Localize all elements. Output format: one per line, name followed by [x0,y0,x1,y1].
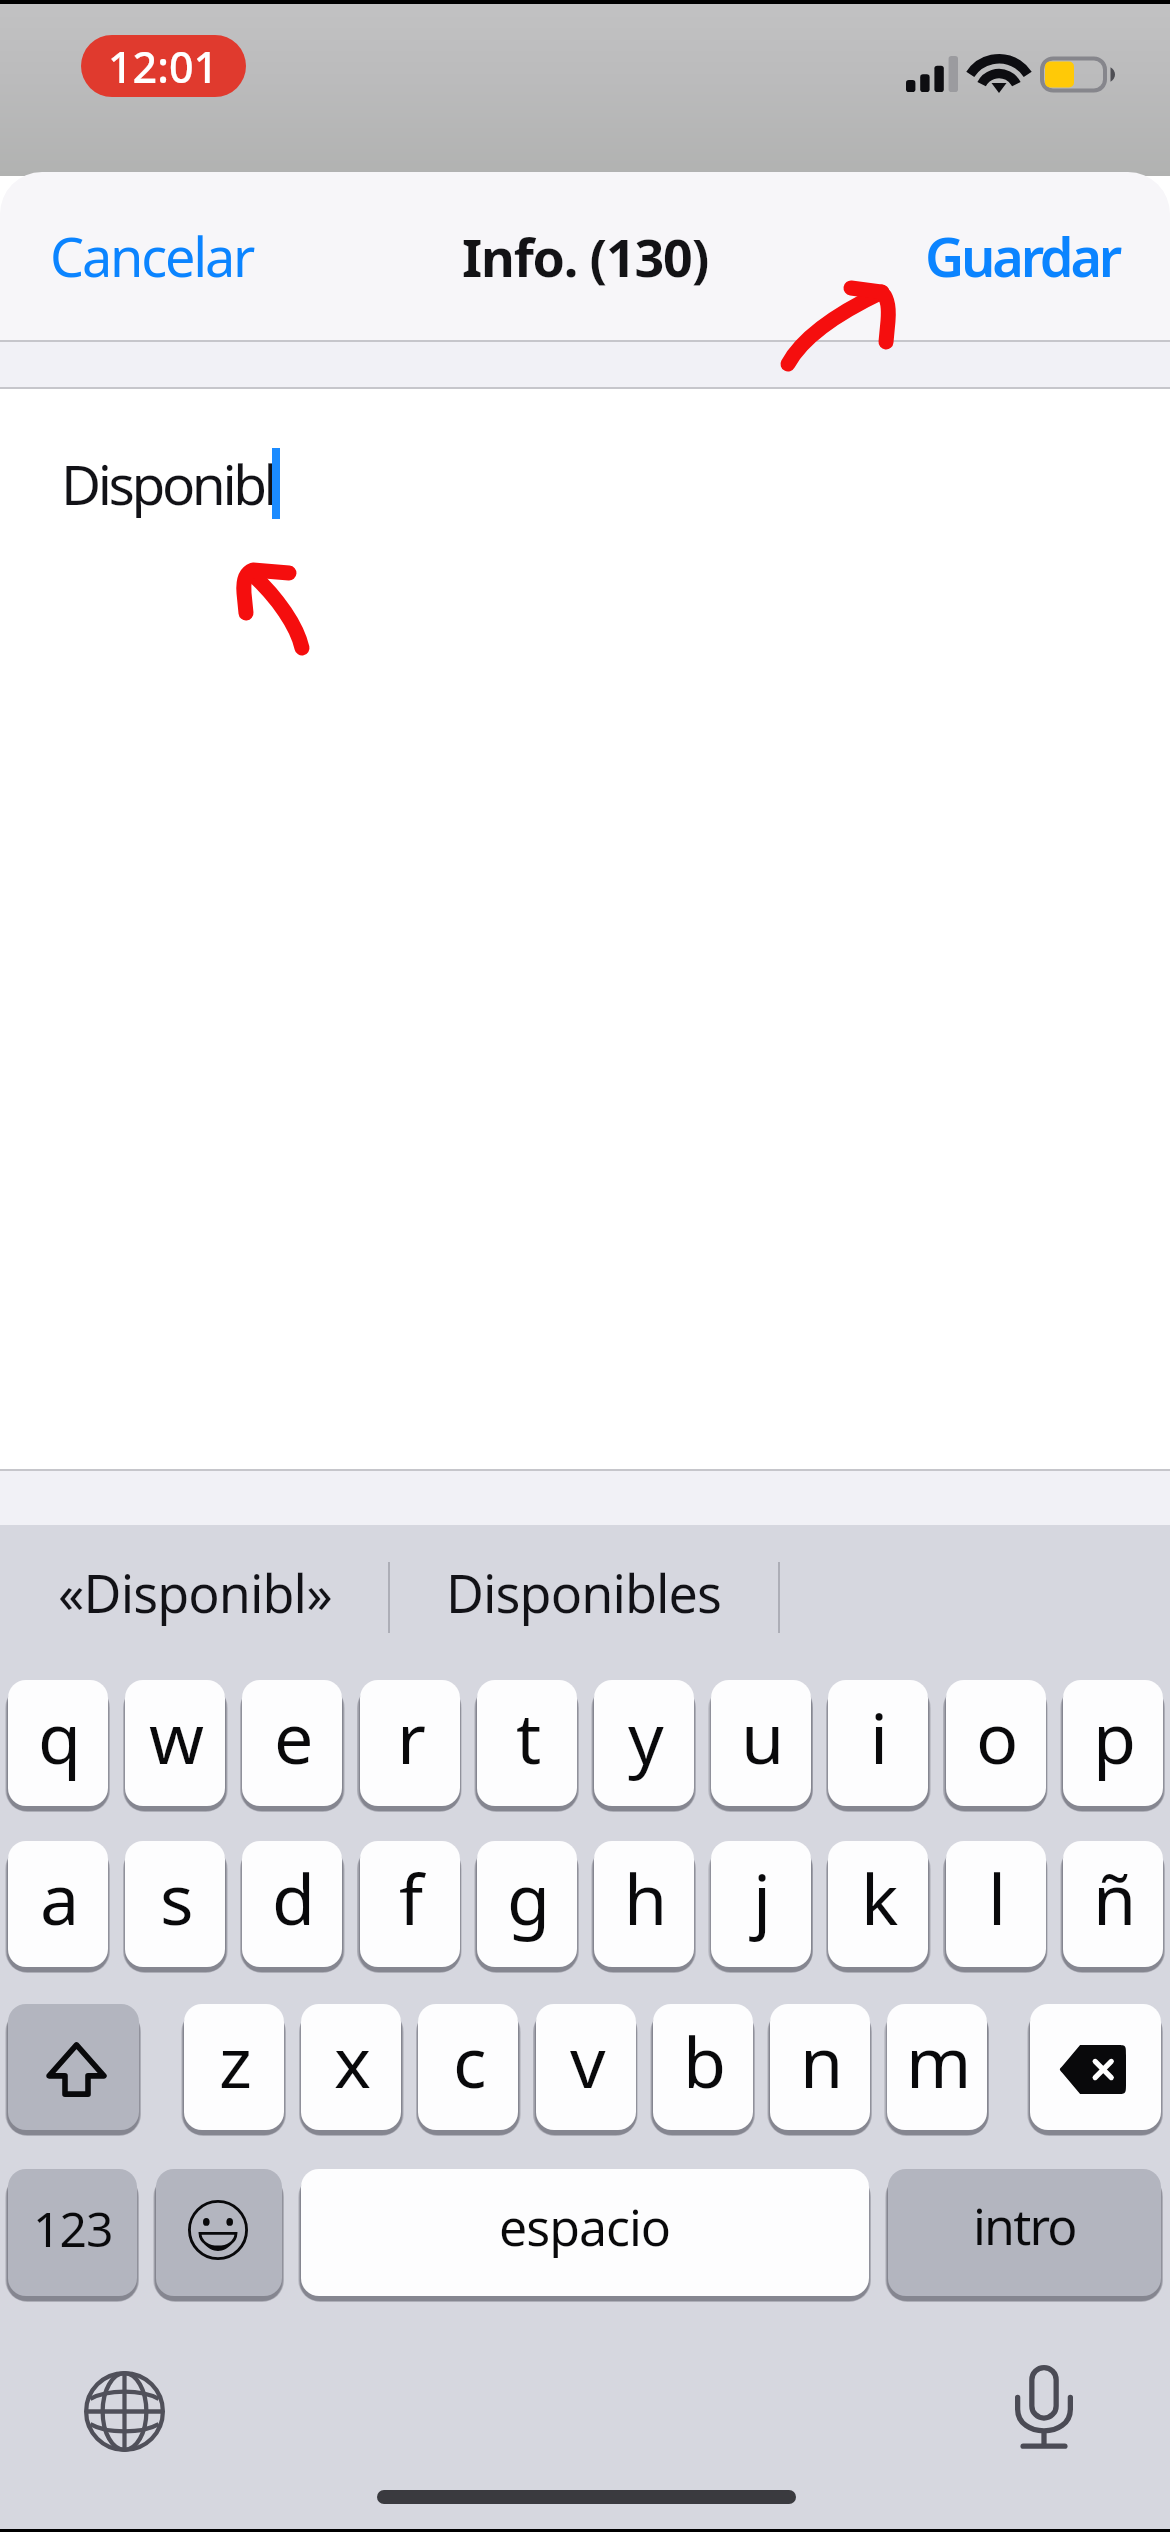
button[interactable]: 123 [8,2169,137,2296]
staticText: 123 [33,2196,113,2261]
button[interactable]: d [242,1841,342,1967]
button[interactable]: g [477,1841,577,1967]
staticText: ñ [1093,1850,1134,1945]
button[interactable]: a [8,1841,108,1967]
staticText: l [988,1850,1004,1945]
staticText: q [38,1689,79,1784]
button[interactable]: b [653,2004,753,2130]
button[interactable]: l [946,1841,1046,1967]
button[interactable]: x [301,2004,401,2130]
staticText: c [453,2013,484,2108]
staticText: b [683,2013,724,2108]
button[interactable]: q [8,1680,108,1806]
staticText: Cancelar [50,219,254,293]
staticText: d [272,1850,313,1945]
button[interactable]: i [828,1680,928,1806]
button[interactable]: Dictate [984,2347,1104,2467]
staticText: Disponibles [446,1557,722,1628]
staticText: r [397,1689,423,1784]
button[interactable]: «Disponibl» [0,1525,389,1659]
button[interactable]: c [418,2004,518,2130]
button[interactable]: s [125,1841,225,1967]
staticText: a [40,1850,77,1945]
staticText: i [870,1689,886,1784]
staticText: m [906,2013,969,2108]
button[interactable]: w [125,1680,225,1806]
staticText: Disponibl [61,446,275,521]
staticText: j [753,1850,769,1945]
button[interactable]: u [711,1680,811,1806]
button[interactable]: intro [888,2169,1161,2296]
button[interactable]: f [360,1841,460,1967]
button[interactable]: o [946,1680,1046,1806]
staticText: Guardar [925,219,1120,293]
button[interactable]: t [477,1680,577,1806]
button[interactable]: Backspace [1030,2004,1161,2130]
staticText: n [800,2013,841,2108]
button[interactable]: r [360,1680,460,1806]
button[interactable]: n [770,2004,870,2130]
staticText: o [976,1689,1016,1784]
button[interactable]: ñ [1063,1841,1163,1967]
button[interactable]: Emoji [156,2169,282,2296]
staticText: espacio [499,2193,671,2261]
button[interactable]: h [594,1841,694,1967]
button[interactable]: k [828,1841,928,1967]
staticText: k [861,1850,896,1945]
staticText: h [624,1850,665,1945]
button[interactable]: j [711,1841,811,1967]
staticText: 12:01 [108,37,219,96]
button[interactable]: Shift [8,2004,139,2130]
staticText: u [741,1689,782,1784]
staticText: p [1093,1689,1134,1784]
button[interactable]: Change keyboard [64,2351,184,2471]
staticText: «Disponibl» [58,1557,332,1628]
button[interactable]: Disponibles [389,1525,778,1659]
staticText: w [149,1689,202,1784]
staticText: t [516,1689,539,1784]
button[interactable]: p [1063,1680,1163,1806]
button[interactable]: v [536,2004,636,2130]
staticText: v [570,2013,603,2108]
button[interactable]: m [887,2004,987,2130]
button[interactable]: y [594,1680,694,1806]
staticText: Info. (130) [462,221,709,292]
button[interactable]: e [242,1680,342,1806]
button[interactable]: Note text field [0,389,1170,1469]
staticText: z [219,2013,249,2108]
staticText: e [274,1689,311,1784]
button[interactable]: Cancelar [28,193,276,319]
button[interactable]: espacio [301,2169,869,2296]
staticText: y [628,1689,661,1784]
staticText: intro [973,2192,1076,2260]
staticText: x [334,2013,369,2108]
button[interactable]: Guardar [903,193,1142,319]
button[interactable]: Recording indicator 12:01 [81,35,246,97]
staticText: g [507,1850,548,1945]
staticText: f [399,1850,421,1945]
button[interactable]: z [184,2004,284,2130]
staticText: s [160,1850,191,1945]
